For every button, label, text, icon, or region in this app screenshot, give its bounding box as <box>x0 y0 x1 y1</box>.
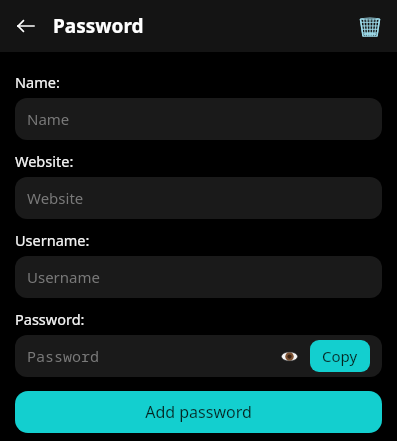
button[interactable]: Back <box>8 8 44 44</box>
staticText: Copy <box>322 346 358 366</box>
staticText: Password <box>53 13 353 39</box>
button[interactable]: Delete <box>353 9 387 43</box>
staticText: Username <box>27 267 370 287</box>
button[interactable]: Username <box>15 256 382 298</box>
button[interactable]: Copy <box>310 340 370 372</box>
staticText: Name: <box>15 72 60 92</box>
staticText: Website <box>27 188 370 208</box>
button[interactable]: Website <box>15 177 382 219</box>
button[interactable]: Password <box>15 335 382 377</box>
button[interactable]: Add password <box>15 391 382 433</box>
button[interactable]: Show password <box>276 343 302 369</box>
staticText: Name <box>27 109 370 129</box>
staticText: Password <box>27 346 276 366</box>
staticText: Password: <box>15 309 85 329</box>
staticText: Add password <box>145 401 252 423</box>
button[interactable]: Name <box>15 98 382 140</box>
staticText: Website: <box>15 151 74 171</box>
staticText: Username: <box>15 230 90 250</box>
